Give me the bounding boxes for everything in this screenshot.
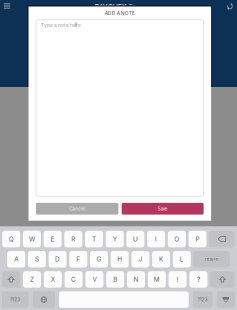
button[interactable]: Menu xyxy=(0,0,13,12)
button[interactable] xyxy=(2,271,20,288)
button[interactable]: S xyxy=(28,251,46,267)
button[interactable]: N xyxy=(127,271,145,288)
button[interactable]: ! xyxy=(169,271,187,288)
button[interactable]: R xyxy=(64,231,82,247)
staticText: C xyxy=(71,276,76,283)
staticText: T xyxy=(92,235,96,243)
button[interactable]: M xyxy=(148,271,166,288)
button[interactable]: B xyxy=(106,271,124,288)
button[interactable] xyxy=(210,271,235,288)
button[interactable]: C xyxy=(65,271,83,288)
staticText: Cancel xyxy=(69,206,85,211)
staticText: ?123 xyxy=(198,297,208,302)
button[interactable]: I xyxy=(147,231,165,247)
staticText: Q xyxy=(9,235,14,243)
button[interactable] xyxy=(209,231,235,247)
button[interactable]: F xyxy=(69,251,87,267)
button[interactable] xyxy=(217,291,235,308)
button[interactable]: X xyxy=(44,271,62,288)
button[interactable]: T xyxy=(85,231,103,247)
button[interactable]: W xyxy=(23,231,41,247)
button[interactable]: Save xyxy=(122,203,204,215)
button[interactable]: Cancel xyxy=(36,203,118,215)
button[interactable]: ?123 xyxy=(193,291,213,308)
staticText: M xyxy=(154,276,160,283)
staticText: Y xyxy=(113,235,117,243)
staticText: ADD A NOTE xyxy=(105,10,135,16)
button[interactable]: J xyxy=(131,251,149,267)
staticText: E xyxy=(51,235,55,243)
staticText: L xyxy=(180,255,184,263)
button[interactable]: Refresh xyxy=(223,0,236,13)
staticText: A xyxy=(14,255,18,263)
staticText: X xyxy=(51,276,55,283)
staticText: Save xyxy=(158,206,168,211)
staticText: F xyxy=(76,255,80,263)
button[interactable] xyxy=(33,291,55,308)
staticText: P xyxy=(195,235,199,243)
staticText: O xyxy=(174,235,179,243)
staticText: ? xyxy=(197,276,200,283)
button[interactable]: Z xyxy=(23,271,41,288)
staticText: V xyxy=(92,276,96,283)
button[interactable]: return xyxy=(193,251,230,267)
button[interactable]: G xyxy=(90,251,108,267)
button[interactable]: Q xyxy=(2,231,20,247)
button[interactable]: U xyxy=(126,231,144,247)
staticText: R xyxy=(71,235,75,243)
staticText: N xyxy=(133,276,138,283)
button[interactable]: K xyxy=(152,251,170,267)
staticText: S xyxy=(35,255,39,263)
staticText: H xyxy=(117,255,122,263)
staticText: W xyxy=(29,235,35,243)
button[interactable]: E xyxy=(44,231,62,247)
button[interactable]: ? xyxy=(189,271,207,288)
staticText: J xyxy=(138,255,142,263)
button[interactable]: O xyxy=(168,231,186,247)
staticText: I xyxy=(155,235,157,243)
staticText: Type a note here. xyxy=(41,22,82,28)
button[interactable] xyxy=(59,291,189,308)
button[interactable]: H xyxy=(111,251,129,267)
staticText: ! xyxy=(177,276,179,283)
staticText: PAYCHEX xyxy=(95,3,127,12)
staticText: Time xyxy=(128,3,145,12)
staticText: D xyxy=(55,255,60,263)
staticText: K xyxy=(159,255,163,263)
button[interactable]: P xyxy=(188,231,206,247)
button[interactable]: L xyxy=(173,251,191,267)
staticText: B xyxy=(113,276,117,283)
staticText: Z xyxy=(30,276,34,283)
button[interactable]: V xyxy=(85,271,103,288)
button[interactable]: Y xyxy=(106,231,124,247)
staticText: ?123 xyxy=(10,297,20,302)
staticText: return xyxy=(205,257,219,262)
button[interactable]: A xyxy=(7,251,25,267)
staticText: G xyxy=(96,255,101,263)
button[interactable]: ?123 xyxy=(2,291,29,308)
staticText: U xyxy=(133,235,138,243)
button[interactable]: D xyxy=(49,251,67,267)
